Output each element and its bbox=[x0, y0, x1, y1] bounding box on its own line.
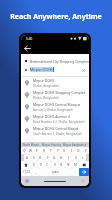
staticText: V bbox=[54, 163, 56, 167]
staticText: Dhaka, Bangladesh bbox=[33, 84, 60, 88]
staticText: Mirpur DOHS Central Mosque bbox=[33, 102, 81, 107]
button[interactable]: Brahmakhand City Shopping Complex bbox=[21, 56, 89, 65]
button[interactable]: Mirpur DOHS bbox=[21, 65, 89, 74]
staticText: F bbox=[47, 156, 49, 160]
staticText: North Mirpur bbox=[23, 143, 40, 147]
button[interactable]: B bbox=[58, 161, 65, 168]
button[interactable]: North Mirpur bbox=[23, 143, 40, 147]
staticText: Mirpur DOHS bbox=[30, 67, 53, 72]
staticText: Mirpur DOHS bbox=[33, 78, 55, 83]
button[interactable] bbox=[79, 161, 89, 168]
staticText: Y bbox=[57, 149, 59, 153]
button[interactable]: I bbox=[68, 147, 75, 154]
button[interactable]: , bbox=[32, 168, 39, 176]
button[interactable]: E bbox=[33, 147, 40, 154]
staticText: . bbox=[75, 170, 76, 174]
staticText: N bbox=[67, 163, 70, 167]
button[interactable]: Mirpur Bangladesh bbox=[63, 143, 87, 147]
staticText: B bbox=[60, 163, 63, 167]
button[interactable]: K bbox=[72, 154, 79, 161]
button[interactable]: W bbox=[27, 147, 33, 154]
button[interactable]: Y bbox=[54, 147, 61, 154]
button[interactable]: Assistant bbox=[81, 179, 85, 183]
button[interactable]: M bbox=[72, 161, 79, 168]
button[interactable]: J bbox=[65, 154, 72, 161]
button[interactable]: ?123 bbox=[21, 168, 32, 176]
button[interactable]: A bbox=[24, 154, 30, 161]
button[interactable]: V bbox=[51, 161, 58, 168]
button[interactable]: S bbox=[30, 154, 37, 161]
button[interactable]: T bbox=[47, 147, 54, 154]
staticText: Q bbox=[23, 149, 26, 153]
staticText: A bbox=[26, 156, 29, 160]
button[interactable]: Mirpur Housing bbox=[42, 143, 62, 147]
staticText: T bbox=[50, 149, 52, 153]
button[interactable]: Recents bbox=[25, 179, 29, 183]
staticText: Avenue 3, Dhaka, Bangladesh bbox=[33, 108, 74, 112]
button[interactable]: O bbox=[75, 147, 82, 154]
staticText: Dhaka, Bangladesh bbox=[33, 96, 60, 100]
button[interactable]: G bbox=[51, 154, 58, 161]
staticText: Brahmakhand City Shopping Complex bbox=[30, 59, 89, 63]
button[interactable]: Mirpur DOHS Central Masjid bbox=[21, 125, 89, 137]
button[interactable]: N bbox=[65, 161, 72, 168]
staticText: R bbox=[43, 149, 45, 153]
button[interactable]: L bbox=[79, 154, 86, 161]
staticText: C bbox=[46, 163, 49, 167]
staticText: P bbox=[85, 149, 87, 153]
button[interactable]: Q bbox=[21, 147, 27, 154]
button[interactable]: C bbox=[44, 161, 51, 168]
button[interactable]: Clear bbox=[80, 67, 86, 73]
button[interactable]: F bbox=[44, 154, 51, 161]
button[interactable]: Z bbox=[30, 161, 37, 168]
button[interactable]: Mirpur DOHS Shopping Complex bbox=[21, 89, 89, 101]
button[interactable] bbox=[21, 161, 30, 168]
staticText: 5:40 bbox=[26, 37, 33, 41]
button[interactable]: Home bbox=[44, 181, 66, 182]
button[interactable]: U bbox=[61, 147, 68, 154]
button[interactable]: R bbox=[40, 147, 47, 154]
staticText: Mirpur DOHS Shopping Complex bbox=[33, 90, 86, 95]
staticText: , bbox=[35, 170, 36, 174]
staticText: Mirpur Bangladesh bbox=[63, 143, 87, 147]
staticText: Z bbox=[33, 163, 35, 167]
button[interactable]: P bbox=[82, 147, 89, 154]
staticText: H bbox=[60, 156, 63, 160]
staticText: K bbox=[75, 156, 77, 160]
staticText: O bbox=[77, 149, 80, 153]
button[interactable]: X bbox=[37, 161, 44, 168]
button[interactable]: D bbox=[37, 154, 44, 161]
button[interactable]: Back bbox=[21, 42, 33, 54]
staticText: I bbox=[71, 149, 73, 153]
staticText: Mirpur DOHS Avenue 4 bbox=[33, 114, 70, 119]
button[interactable]: Mirpur DOHS Avenue 4 bbox=[21, 113, 89, 125]
staticText: E bbox=[36, 149, 38, 153]
button[interactable]: Mirpur DOHS bbox=[21, 77, 89, 89]
staticText: ?123 bbox=[23, 170, 30, 174]
staticText: G bbox=[53, 156, 56, 160]
staticText: Mirpur DOHS Central Masjid bbox=[33, 126, 78, 131]
staticText: D bbox=[39, 156, 42, 160]
staticText: Mirpur Housing bbox=[42, 143, 62, 147]
staticText: J bbox=[68, 156, 69, 160]
staticText: U bbox=[63, 149, 66, 153]
staticText: W bbox=[29, 149, 32, 153]
button[interactable] bbox=[79, 168, 89, 176]
button[interactable]: Mirpur DOHS Central Mosque bbox=[21, 101, 89, 113]
staticText: X bbox=[40, 163, 42, 167]
staticText: Road Number 4-2, Dhaka, Bangladesh bbox=[33, 120, 85, 124]
staticText: Reach Anywhere, Anytime bbox=[0, 12, 112, 22]
staticText: space bbox=[52, 170, 60, 174]
staticText: S bbox=[33, 156, 35, 160]
staticText: South Avenue 3, Dhaka, Bangladesh bbox=[33, 132, 83, 136]
button[interactable]: space bbox=[39, 168, 72, 176]
staticText: M bbox=[74, 163, 77, 167]
button[interactable]: . bbox=[72, 168, 79, 176]
button[interactable]: H bbox=[58, 154, 65, 161]
staticText: L bbox=[82, 156, 84, 160]
